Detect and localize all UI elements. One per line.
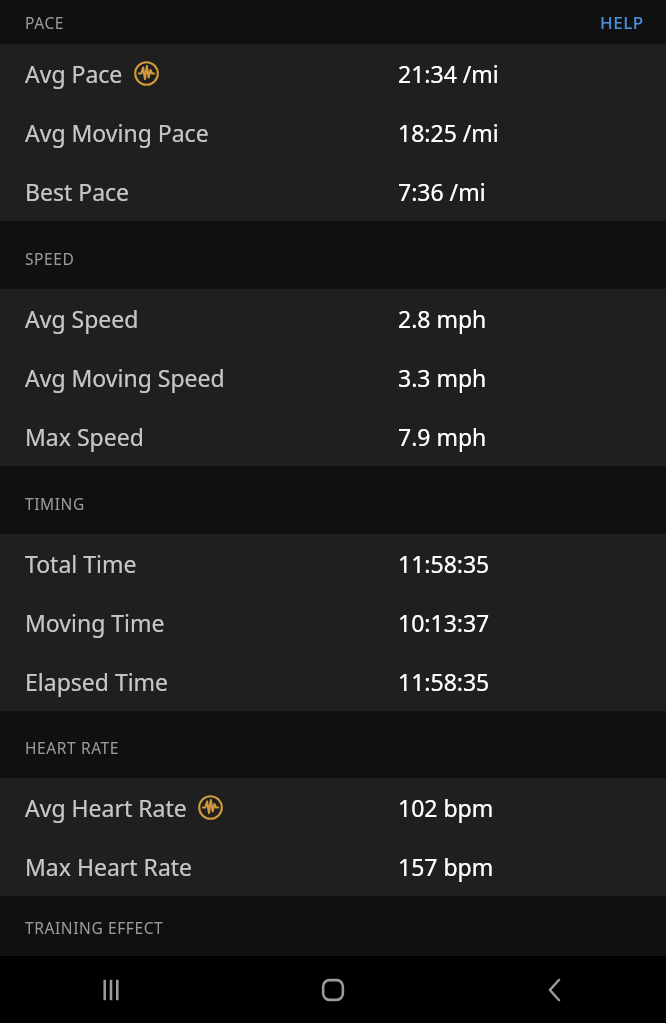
- staticText: 21:34 /mi: [398, 58, 499, 89]
- button[interactable]: Total Time: [0, 534, 666, 593]
- staticText: 157 bpm: [398, 851, 494, 882]
- button[interactable]: Max Heart Rate: [0, 837, 666, 896]
- staticText: HEART RATE: [25, 737, 119, 758]
- button[interactable]: Recent apps: [0, 956, 222, 1023]
- staticText: Avg Moving Speed: [25, 362, 225, 393]
- button[interactable]: HELP: [578, 3, 666, 42]
- button[interactable]: Best Pace: [0, 162, 666, 221]
- button[interactable]: Elapsed Time: [0, 652, 666, 711]
- staticText: Avg Moving Pace: [25, 117, 209, 148]
- button[interactable]: Home: [222, 956, 444, 1023]
- button[interactable]: Avg Moving Speed: [0, 348, 666, 407]
- staticText: 3.3 mph: [398, 362, 487, 393]
- staticText: Avg Heart Rate: [25, 792, 187, 823]
- staticText: Max Heart Rate: [25, 851, 193, 882]
- button[interactable]: Max Speed: [0, 407, 666, 466]
- staticText: Avg Speed: [25, 303, 139, 334]
- staticText: Best Pace: [25, 176, 130, 207]
- button[interactable]: Moving Time: [0, 593, 666, 652]
- staticText: Total Time: [25, 548, 137, 579]
- staticText: SPEED: [25, 248, 75, 269]
- staticText: Moving Time: [25, 607, 165, 638]
- button[interactable]: Avg Speed: [0, 289, 666, 348]
- staticText: Elapsed Time: [25, 666, 169, 697]
- button[interactable]: Avg Pace: [0, 44, 666, 103]
- button[interactable]: Back: [444, 956, 666, 1023]
- button[interactable]: Avg Heart Rate: [0, 778, 666, 837]
- staticText: 7.9 mph: [398, 421, 487, 452]
- staticText: PACE: [25, 12, 65, 33]
- staticText: Avg Pace: [25, 58, 123, 89]
- staticText: 11:58:35: [398, 666, 490, 697]
- staticText: Max Speed: [25, 421, 144, 452]
- staticText: TRAINING EFFECT: [25, 917, 164, 938]
- staticText: 11:58:35: [398, 548, 490, 579]
- staticText: 7:36 /mi: [398, 176, 486, 207]
- staticText: 102 bpm: [398, 792, 494, 823]
- staticText: HELP: [600, 11, 644, 34]
- staticText: 10:13:37: [398, 607, 490, 638]
- staticText: 2.8 mph: [398, 303, 487, 334]
- staticText: 18:25 /mi: [398, 117, 499, 148]
- staticText: TIMING: [25, 493, 85, 514]
- button[interactable]: Avg Moving Pace: [0, 103, 666, 162]
